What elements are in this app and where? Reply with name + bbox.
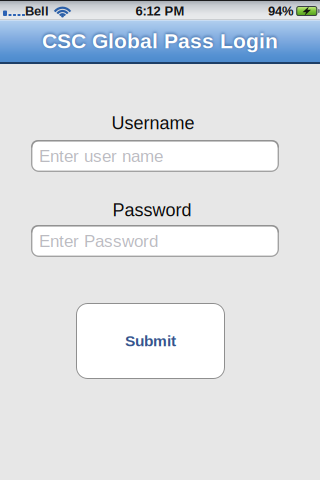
staticText: Submit (125, 332, 176, 350)
staticText: Bell (25, 4, 49, 18)
staticText: 94% (268, 4, 294, 18)
button[interactable]: Enter user name (31, 140, 279, 172)
staticText: Enter Password (39, 231, 158, 250)
staticText: Username (111, 113, 194, 133)
staticText: CSC Global Pass Login (42, 29, 278, 53)
button[interactable]: Enter Password (31, 225, 279, 257)
staticText: Password (112, 200, 191, 220)
button[interactable]: Submit (76, 303, 225, 379)
staticText: 6:12 PM (135, 4, 184, 18)
staticText: Enter user name (39, 146, 163, 165)
